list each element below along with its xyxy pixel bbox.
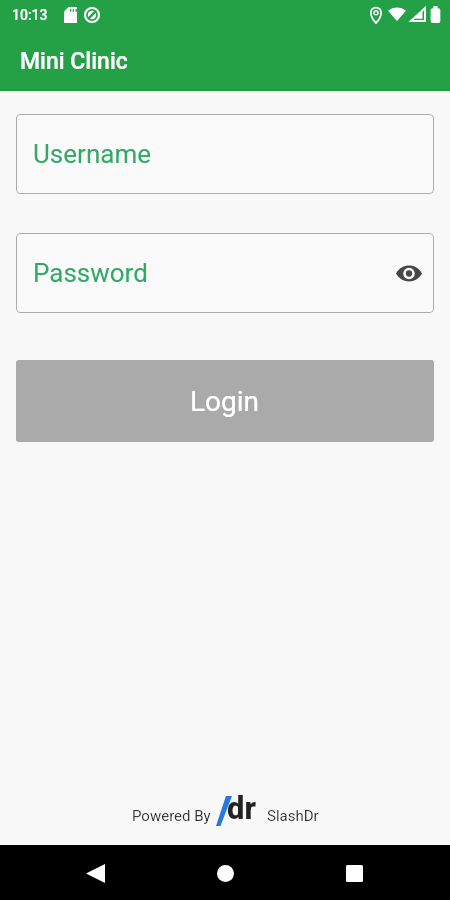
- staticText: SlashDr: [267, 807, 319, 825]
- staticText: Mini Clinic: [20, 48, 128, 75]
- button[interactable]: Recents: [330, 849, 378, 897]
- button[interactable]: Back: [71, 849, 119, 897]
- staticText: Powered By: [132, 807, 211, 825]
- button[interactable]: Login: [16, 360, 434, 442]
- button[interactable]: Password: [16, 233, 434, 313]
- staticText: dr: [227, 790, 256, 826]
- button[interactable]: Home: [201, 849, 249, 897]
- staticText: Password: [33, 258, 148, 288]
- staticText: Username: [33, 139, 151, 169]
- staticText: Login: [190, 385, 260, 418]
- button[interactable]: Show password: [395, 259, 423, 287]
- staticText: 10:13: [12, 7, 48, 23]
- button[interactable]: Username: [16, 114, 434, 194]
